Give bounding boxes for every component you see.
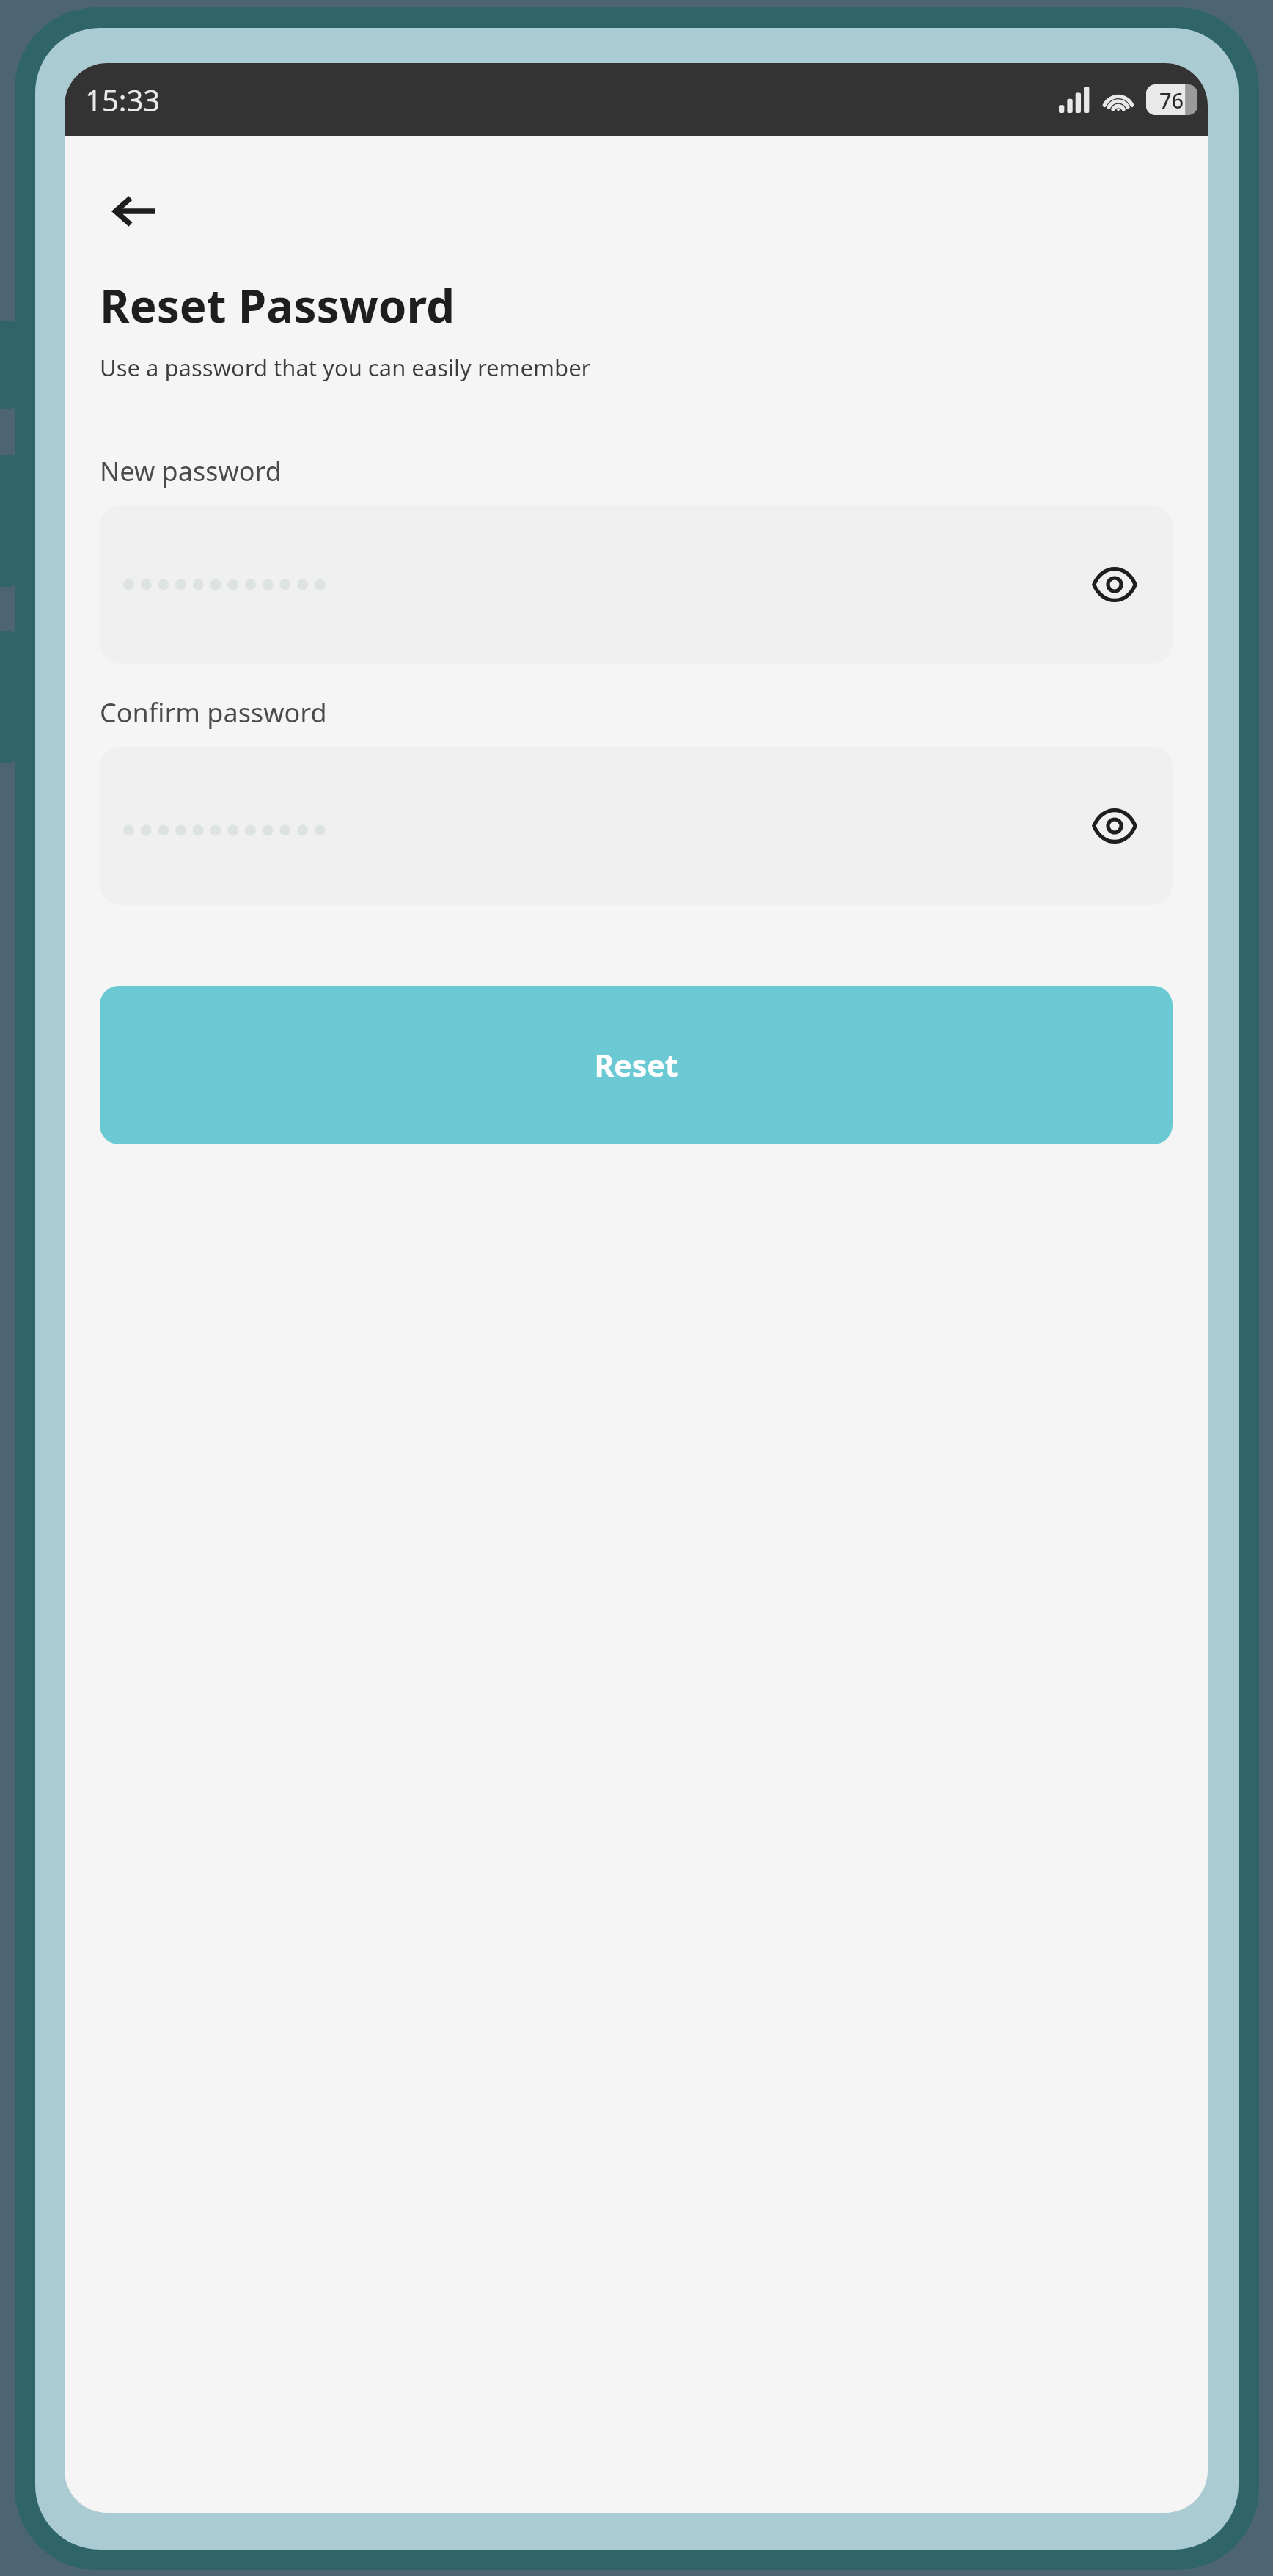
button[interactable]: Reset (100, 986, 1173, 1144)
staticText: Reset (594, 1044, 678, 1086)
staticText: Confirm password (100, 695, 327, 731)
button[interactable]: Back (100, 176, 170, 246)
button[interactable]: Show password (1074, 786, 1155, 866)
button[interactable]: Show password (100, 505, 1173, 664)
button[interactable]: Show password (100, 747, 1173, 905)
staticText: 15:33 (85, 80, 161, 120)
staticText: New password (100, 453, 282, 489)
button[interactable]: Show password (1074, 544, 1155, 625)
staticText: Reset Password (100, 274, 455, 336)
staticText: 76 (1159, 86, 1184, 114)
staticText: Use a password that you can easily remem… (100, 352, 591, 383)
